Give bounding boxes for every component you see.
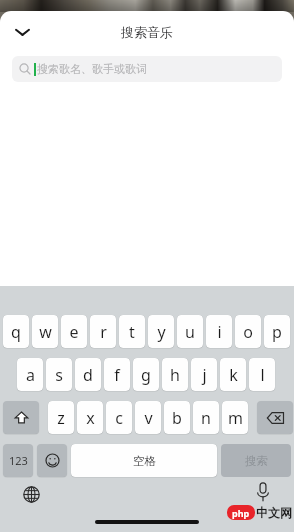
staticText: i [217,321,222,343]
button[interactable]: 收起 [6,16,38,48]
staticText: 搜索音乐 [121,24,173,40]
button[interactable]: b [164,401,190,434]
button[interactable]: t [119,315,145,348]
staticText: a [26,364,35,386]
staticText: c [115,407,123,429]
staticText: 搜索 [245,454,268,468]
button[interactable]: r [90,315,116,348]
staticText: u [185,321,195,343]
staticText: f [114,364,120,386]
button[interactable]: h [162,358,188,391]
button[interactable]: u [177,315,203,348]
staticText: t [129,321,135,343]
button[interactable]: v [135,401,161,434]
button[interactable]: e [61,315,87,348]
button[interactable]: 语音输入 [250,479,276,505]
button[interactable]: z [48,401,74,434]
staticText: l [260,364,265,386]
staticText: 搜索歌名、歌手或歌词 [37,62,147,76]
button[interactable]: Shift [3,401,39,434]
button[interactable]: l [249,358,275,391]
staticText: r [100,321,107,343]
button[interactable]: q [3,315,29,348]
staticText: h [170,364,180,386]
button[interactable]: 搜索 [221,444,291,477]
button[interactable]: k [220,358,246,391]
button[interactable]: 123 [3,444,33,477]
button[interactable]: c [106,401,132,434]
staticText: p [272,321,282,343]
button[interactable]: o [235,315,261,348]
button[interactable]: w [32,315,58,348]
staticText: j [202,364,207,386]
staticText: m [228,407,243,429]
staticText: 中文网 [256,505,292,520]
button[interactable]: 搜索歌名、歌手或歌词 [12,56,282,82]
staticText: e [69,321,79,343]
staticText: 123 [9,453,28,468]
button[interactable]: j [191,358,217,391]
staticText: y [157,321,166,343]
button[interactable]: Delete [257,401,293,434]
staticText: n [201,407,211,429]
button[interactable]: d [75,358,101,391]
button[interactable]: g [133,358,159,391]
staticText: k [229,364,238,386]
button[interactable]: i [206,315,232,348]
button[interactable]: y [148,315,174,348]
staticText: d [83,364,93,386]
staticText: php [232,507,250,519]
button[interactable]: s [46,358,72,391]
staticText: s [55,364,63,386]
staticText: x [86,407,95,429]
staticText: z [57,407,65,429]
staticText: 空格 [133,454,156,468]
button[interactable]: n [193,401,219,434]
button[interactable]: 空格 [71,444,217,477]
staticText: g [141,364,151,386]
staticText: o [243,321,253,343]
button[interactable]: f [104,358,130,391]
button[interactable]: 切换键盘语言 [18,481,44,507]
button[interactable]: x [77,401,103,434]
staticText: q [11,321,21,343]
staticText: w [39,321,52,343]
button[interactable]: m [222,401,248,434]
button[interactable]: a [17,358,43,391]
button[interactable]: Emoji [37,444,67,477]
staticText: v [144,407,153,429]
button[interactable]: p [264,315,290,348]
staticText: b [172,407,182,429]
